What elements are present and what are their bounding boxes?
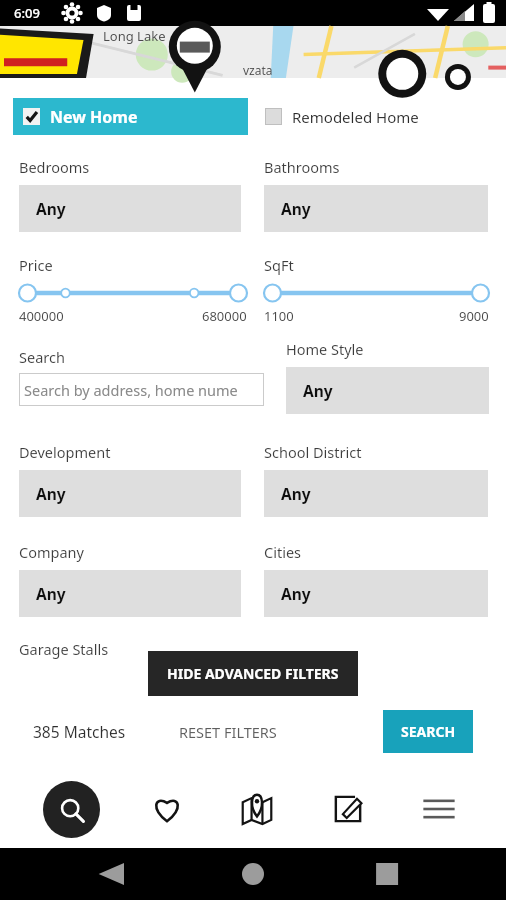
staticText: SEARCH [401, 722, 456, 741]
staticText: Company [19, 542, 84, 562]
staticText: Development [19, 442, 111, 462]
button[interactable]: Any [19, 470, 241, 517]
staticText: Long Lake [103, 27, 166, 45]
staticText: 400000 [19, 307, 64, 325]
button[interactable]: HIDE ADVANCED FILTERS [148, 651, 358, 696]
staticText: Any [303, 380, 333, 401]
staticText: HIDE ADVANCED FILTERS [167, 664, 339, 683]
staticText: Search [19, 347, 65, 367]
staticText: vzata [243, 62, 273, 78]
staticText: Remodeled Home [292, 107, 419, 127]
staticText: Search by address, home nume [24, 380, 238, 400]
staticText: Any [36, 483, 66, 504]
button[interactable]: Any [19, 570, 241, 617]
button[interactable]: Map [233, 785, 281, 833]
staticText: School District [264, 442, 362, 462]
staticText: Any [281, 198, 311, 219]
staticText: RESET FILTERS [179, 722, 277, 742]
staticText: 1100 [264, 307, 294, 325]
button[interactable]: New Home [13, 98, 248, 135]
button[interactable]: Any [19, 185, 241, 232]
staticText: SqFt [264, 255, 294, 275]
button[interactable]: RESET FILTERS [179, 722, 277, 742]
staticText: Price [19, 255, 53, 275]
staticText: Bathrooms [264, 157, 340, 177]
button[interactable]: Any [264, 570, 488, 617]
button[interactable] [264, 282, 489, 304]
staticText: 385 Matches [33, 721, 126, 742]
button[interactable]: Menu [415, 785, 463, 833]
staticText: Any [36, 198, 66, 219]
button[interactable]: Search [43, 781, 100, 838]
button[interactable]: Any [286, 367, 489, 414]
staticText: 6:09 [14, 4, 40, 22]
staticText: Any [281, 483, 311, 504]
button[interactable]: Search by address, home nume [19, 373, 264, 406]
staticText: 9000 [459, 307, 489, 325]
button[interactable]: Favorites [143, 785, 191, 833]
button[interactable]: Edit [324, 785, 372, 833]
staticText: Home Style [286, 339, 364, 359]
button[interactable]: SEARCH [383, 710, 473, 753]
button[interactable]: Remodeled Home [265, 98, 419, 135]
button[interactable]: Any [264, 470, 488, 517]
staticText: Any [281, 583, 311, 604]
staticText: Cities [264, 542, 302, 562]
staticText: Bedrooms [19, 157, 90, 177]
staticText: Any [36, 583, 66, 604]
staticText: 680000 [202, 307, 247, 325]
staticText: Garage Stalls [19, 639, 109, 659]
staticText: New Home [50, 106, 138, 128]
button[interactable]: Any [264, 185, 488, 232]
button[interactable]: 385 Matches [33, 721, 126, 742]
button[interactable] [19, 282, 247, 304]
